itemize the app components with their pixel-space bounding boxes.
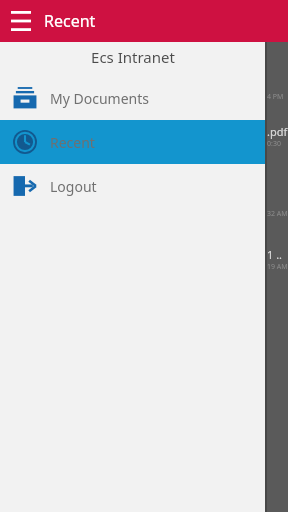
staticText: 32 AM (267, 209, 288, 219)
button[interactable]: Open navigation menu (0, 0, 42, 42)
staticText: 4 PM (267, 92, 284, 102)
staticText: 0:30 (267, 139, 281, 149)
button[interactable]: Logout (0, 164, 265, 208)
button[interactable]: My Documents (0, 76, 265, 120)
staticText: Recent (44, 10, 96, 32)
staticText: 1 .. (267, 247, 283, 262)
staticText: 19 AM (267, 262, 288, 272)
button[interactable]: Recent (0, 120, 265, 164)
staticText: Ecs Intranet (91, 47, 175, 67)
staticText: Recent (50, 133, 95, 152)
staticText: My Documents (50, 89, 149, 108)
staticText: .pdf (267, 124, 288, 139)
staticText: Logout (50, 177, 97, 196)
